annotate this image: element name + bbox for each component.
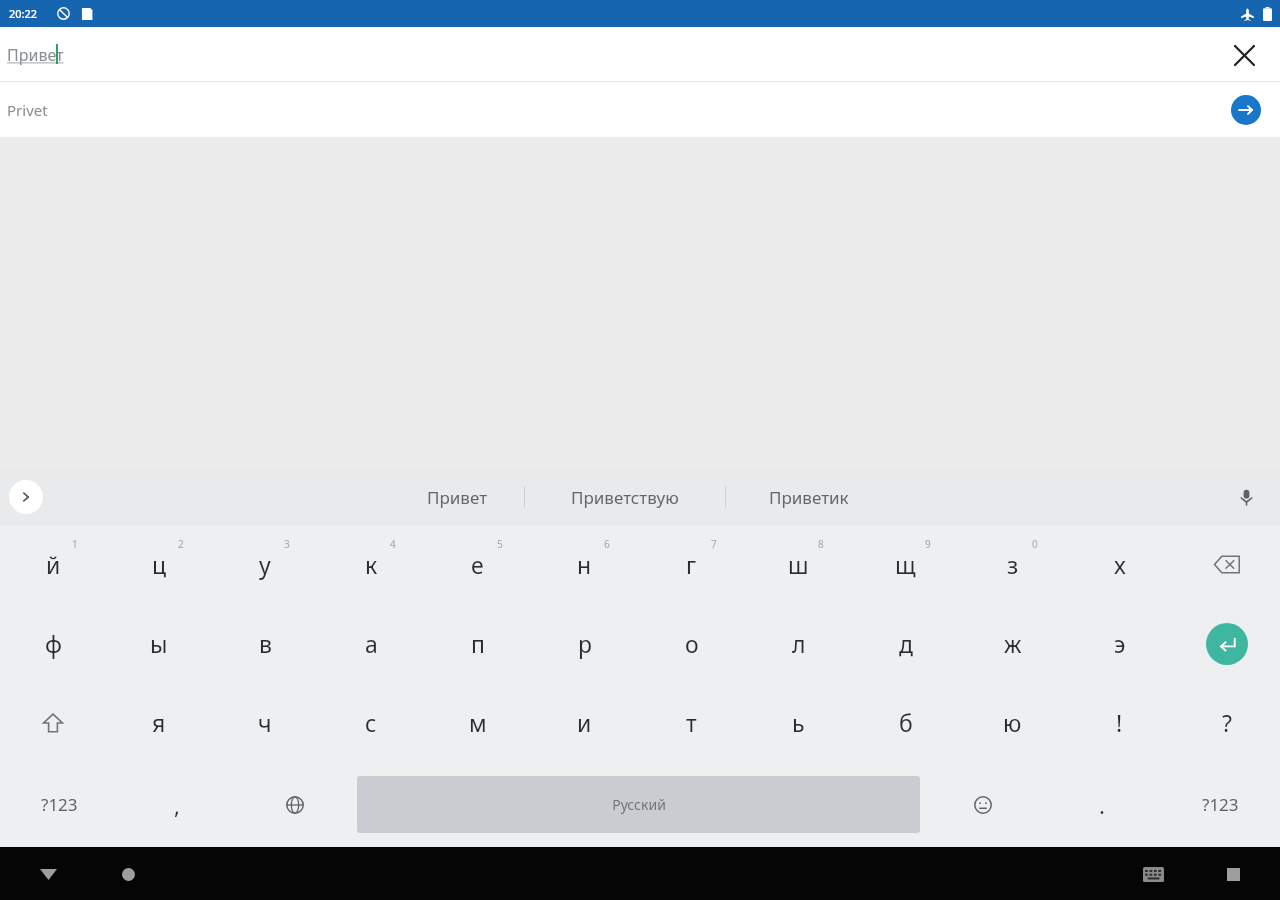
button[interactable]: ?123 <box>1161 762 1280 847</box>
staticText: т <box>686 707 697 738</box>
staticText: у <box>259 549 271 580</box>
button[interactable]: п <box>424 604 531 683</box>
button[interactable]: Русский <box>357 776 920 833</box>
button[interactable]: Voice input <box>1226 477 1266 517</box>
button[interactable]: Clear <box>1222 33 1266 77</box>
staticText: ю <box>1003 707 1022 738</box>
button[interactable]: и <box>531 683 638 762</box>
button[interactable]: я <box>106 683 212 762</box>
button[interactable]: ж <box>959 604 1066 683</box>
button[interactable]: Shift <box>0 683 106 762</box>
staticText: 5 <box>497 537 503 551</box>
button[interactable]: Expand suggestions <box>9 480 43 514</box>
button[interactable]: Привет <box>390 469 524 525</box>
button[interactable]: Change language <box>236 762 354 847</box>
button[interactable]: ь <box>745 683 852 762</box>
staticText: Привет <box>427 486 488 509</box>
button[interactable]: л <box>745 604 852 683</box>
button[interactable]: ! <box>1066 683 1173 762</box>
button[interactable]: ? <box>1173 683 1280 762</box>
staticText: 8 <box>818 537 824 551</box>
staticText: и <box>577 707 592 738</box>
staticText: х <box>1114 549 1126 580</box>
staticText: в <box>259 628 272 659</box>
staticText: о <box>685 628 699 659</box>
button[interactable]: р <box>531 604 638 683</box>
button[interactable]: э <box>1066 604 1173 683</box>
staticText: , <box>174 790 180 820</box>
button[interactable]: ф <box>0 604 106 683</box>
staticText: ч <box>258 707 272 738</box>
button[interactable]: в <box>212 604 318 683</box>
staticText: ц <box>152 549 167 580</box>
button[interactable]: Приветик <box>726 469 891 525</box>
button[interactable]: о <box>638 604 745 683</box>
staticText: е <box>471 549 484 580</box>
button[interactable]: Приветствую <box>525 469 725 525</box>
button[interactable]: ц <box>106 525 212 604</box>
staticText: 6 <box>604 537 610 551</box>
staticText: 1 <box>72 537 78 551</box>
staticText: с <box>365 707 377 738</box>
button[interactable]: . <box>1042 762 1161 847</box>
button[interactable]: к <box>318 525 424 604</box>
button[interactable]: ш <box>745 525 852 604</box>
staticText: 2 <box>178 537 184 551</box>
button[interactable]: Enter <box>1173 604 1280 683</box>
button[interactable]: Send <box>1224 88 1268 132</box>
staticText: ? <box>1222 707 1232 738</box>
staticText: Privet <box>7 100 48 120</box>
staticText: з <box>1007 549 1019 580</box>
button[interactable]: Home <box>106 852 150 896</box>
button[interactable]: щ <box>852 525 959 604</box>
button[interactable]: з <box>959 525 1066 604</box>
button[interactable]: г <box>638 525 745 604</box>
button[interactable]: ю <box>959 683 1066 762</box>
button[interactable]: ?123 <box>0 762 118 847</box>
button[interactable]: м <box>424 683 531 762</box>
staticText: ф <box>45 628 62 659</box>
button[interactable]: с <box>318 683 424 762</box>
staticText: ь <box>792 707 805 738</box>
button[interactable]: ы <box>106 604 212 683</box>
staticText: Приветик <box>769 486 849 509</box>
staticText: 4 <box>390 537 396 551</box>
button[interactable]: т <box>638 683 745 762</box>
button[interactable]: , <box>118 762 236 847</box>
button[interactable]: х <box>1066 525 1173 604</box>
staticText: л <box>792 628 806 659</box>
staticText: м <box>469 707 487 738</box>
staticText: г <box>686 549 697 580</box>
button[interactable]: й <box>0 525 106 604</box>
button[interactable]: б <box>852 683 959 762</box>
staticText: Приветствую <box>571 486 679 509</box>
button[interactable]: Hide keyboard <box>26 852 70 896</box>
button[interactable]: у <box>212 525 318 604</box>
staticText: й <box>46 549 61 580</box>
staticText: ?123 <box>1202 793 1239 816</box>
button[interactable]: Backspace <box>1173 525 1280 604</box>
staticText: я <box>152 707 166 738</box>
button[interactable]: д <box>852 604 959 683</box>
staticText: п <box>471 628 485 659</box>
button[interactable]: Emoji <box>923 762 1042 847</box>
staticText: 3 <box>284 537 290 551</box>
staticText: ж <box>1004 628 1022 659</box>
staticText: ?123 <box>41 793 78 816</box>
staticText: 9 <box>925 537 931 551</box>
staticText: э <box>1114 628 1126 659</box>
button[interactable]: Switch keyboard <box>1131 852 1175 896</box>
staticText: ! <box>1116 707 1123 738</box>
button[interactable]: н <box>531 525 638 604</box>
staticText: 20:22 <box>9 6 38 21</box>
staticText: б <box>899 707 913 738</box>
staticText: щ <box>895 549 916 580</box>
staticText: 0 <box>1032 537 1038 551</box>
button[interactable]: ч <box>212 683 318 762</box>
button[interactable]: е <box>424 525 531 604</box>
staticText: р <box>578 628 592 659</box>
staticText: н <box>577 549 592 580</box>
button[interactable]: Recent apps <box>1211 852 1255 896</box>
button[interactable]: а <box>318 604 424 683</box>
staticText: к <box>365 549 378 580</box>
